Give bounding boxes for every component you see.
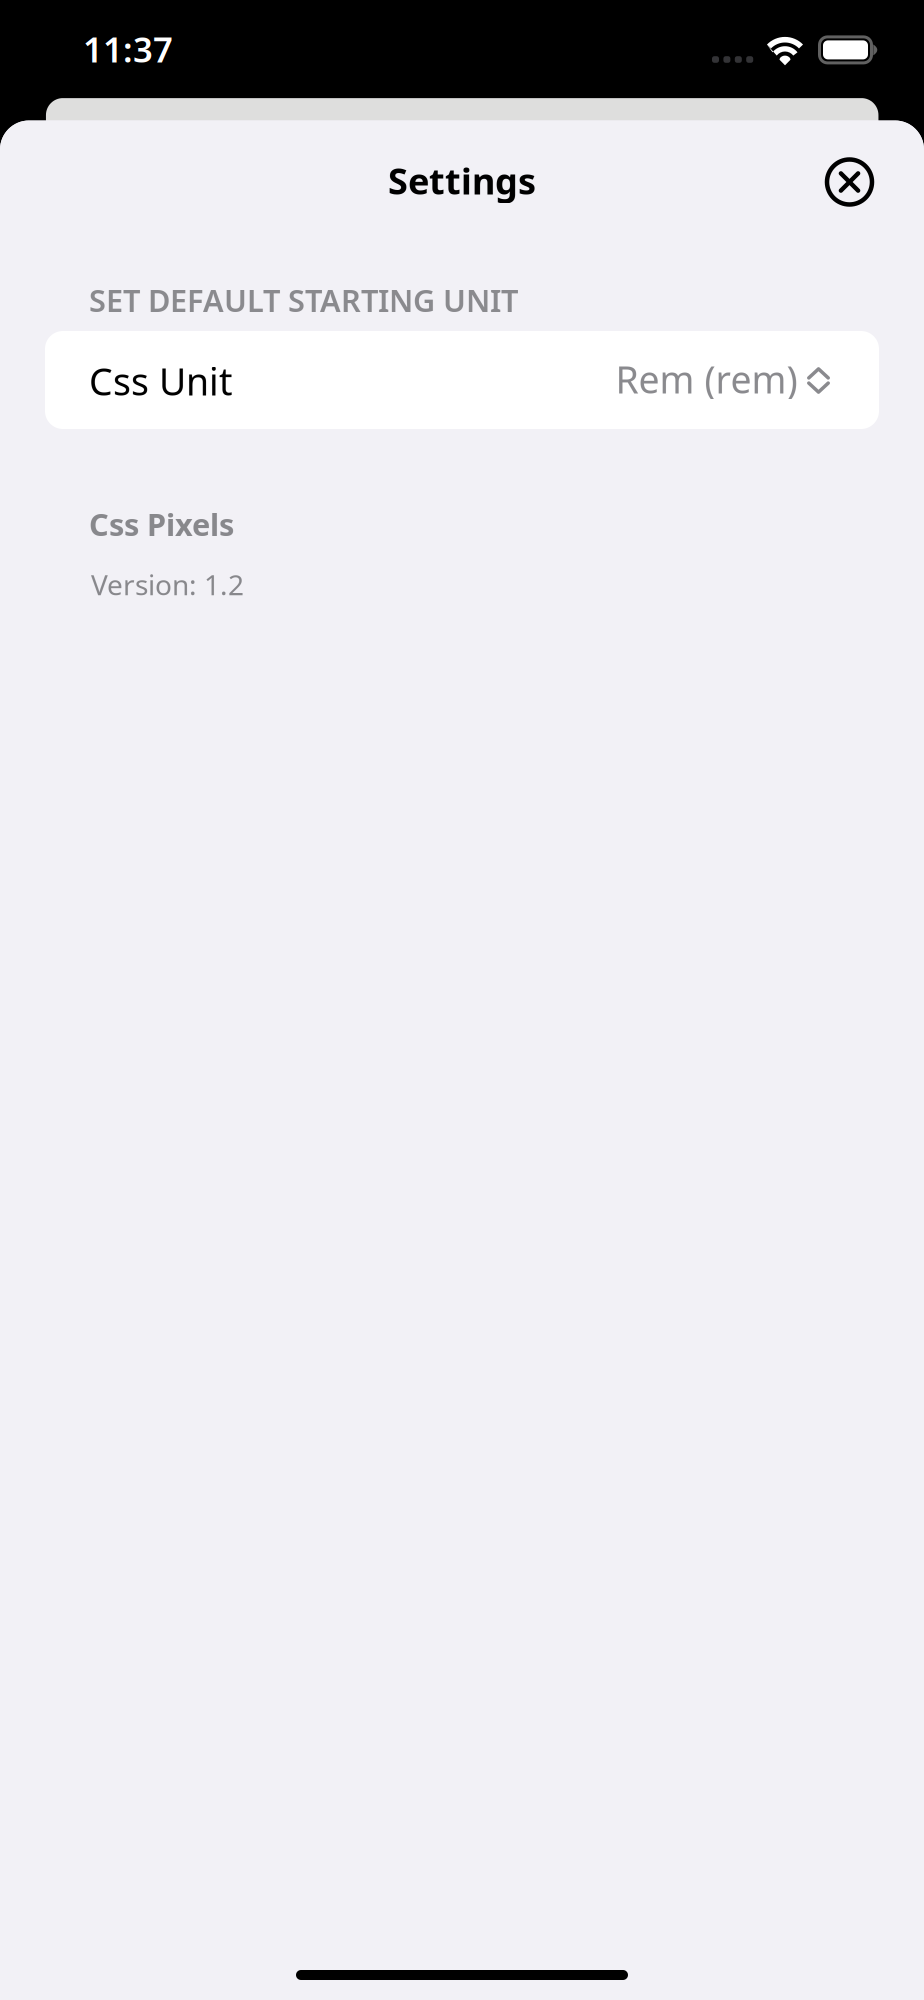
button[interactable]: Css Unit [45, 331, 879, 429]
button[interactable]: Close [818, 151, 880, 213]
staticText: Rem (rem) [615, 354, 797, 404]
staticText: Css Unit [89, 356, 232, 406]
staticText: Css Pixels [89, 504, 234, 544]
staticText: Version: 1.2 [91, 566, 244, 603]
staticText: 11:37 [83, 26, 173, 72]
staticText: Settings [388, 157, 536, 204]
staticText: SET DEFAULT STARTING UNIT [89, 280, 518, 320]
